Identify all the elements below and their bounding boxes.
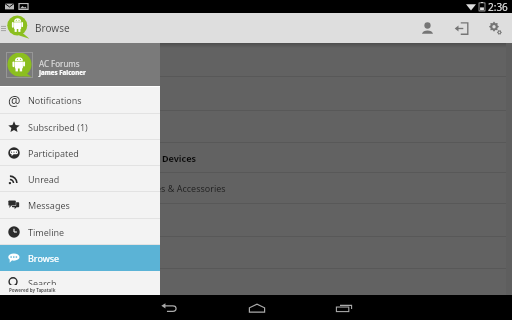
button[interactable]: Home (213, 295, 300, 320)
staticText: Messages (28, 199, 70, 211)
staticText: Participated (28, 147, 79, 159)
button[interactable]: @ (0, 87, 160, 113)
button[interactable] (0, 111, 512, 142)
button[interactable]: Timeline (0, 219, 160, 244)
button[interactable]: Messages (0, 192, 160, 218)
staticText: Android Devices (124, 152, 197, 164)
staticText: Subscribed (1) (28, 121, 88, 133)
staticText: Notifications (28, 94, 82, 106)
button[interactable]: Back (126, 295, 213, 320)
button[interactable]: Log out (444, 13, 478, 43)
staticText: Phones & Accessories (134, 182, 226, 194)
staticText: Browse (28, 252, 60, 264)
button[interactable] (0, 43, 512, 76)
button[interactable] (0, 269, 512, 295)
button[interactable]: Open navigation drawer (0, 13, 6, 43)
button[interactable]: Android Devices (0, 143, 512, 172)
staticText: 2:36 (488, 0, 508, 13)
button[interactable]: Browse (0, 245, 160, 271)
staticText: Timeline (28, 226, 65, 238)
staticText: Unread (28, 173, 60, 185)
button[interactable]: Participated (0, 140, 160, 165)
staticText: Search (28, 277, 57, 289)
button[interactable] (0, 237, 512, 268)
staticText: @ (8, 91, 20, 110)
staticText: AC Forums (39, 58, 80, 69)
staticText: Browse (35, 21, 70, 35)
button[interactable]: Search (0, 271, 160, 295)
button[interactable] (0, 204, 512, 236)
button[interactable]: Account (410, 13, 444, 43)
button[interactable]: Subscribed (1) (0, 114, 160, 139)
button[interactable] (0, 77, 512, 110)
button[interactable]: Unread (0, 166, 160, 191)
button[interactable]: AC Forums (0, 43, 160, 86)
button[interactable]: Phones & Accessories (0, 173, 512, 203)
staticText: James Falconer (39, 68, 86, 76)
button[interactable]: Settings (478, 13, 512, 43)
button[interactable]: Recent apps (300, 295, 387, 320)
staticText: Powered by Tapatalk (9, 287, 56, 293)
